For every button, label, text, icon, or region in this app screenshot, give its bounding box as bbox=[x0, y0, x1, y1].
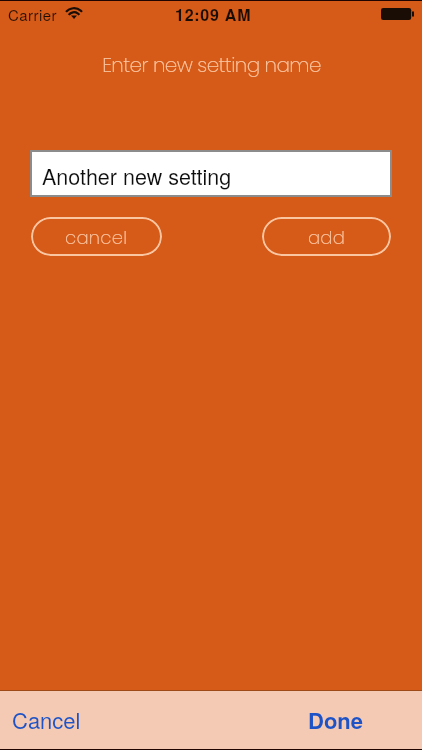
staticText: Another new setting bbox=[42, 160, 232, 191]
staticText: Cancel bbox=[12, 704, 81, 736]
staticText: Carrier bbox=[8, 4, 57, 25]
staticText: add bbox=[308, 225, 346, 250]
other: Wi-Fi signal bbox=[65, 6, 83, 20]
staticText: Done bbox=[308, 704, 364, 736]
button[interactable]: Done bbox=[294, 695, 378, 745]
staticText: Enter new setting name bbox=[102, 51, 321, 77]
button[interactable]: Another new setting bbox=[30, 150, 392, 197]
staticText: cancel bbox=[65, 225, 128, 250]
button[interactable]: add bbox=[262, 217, 391, 256]
other: Battery full bbox=[381, 8, 414, 20]
button[interactable]: cancel bbox=[31, 217, 162, 256]
button[interactable]: Cancel bbox=[0, 695, 95, 745]
staticText: 12:09 AM bbox=[175, 3, 252, 26]
